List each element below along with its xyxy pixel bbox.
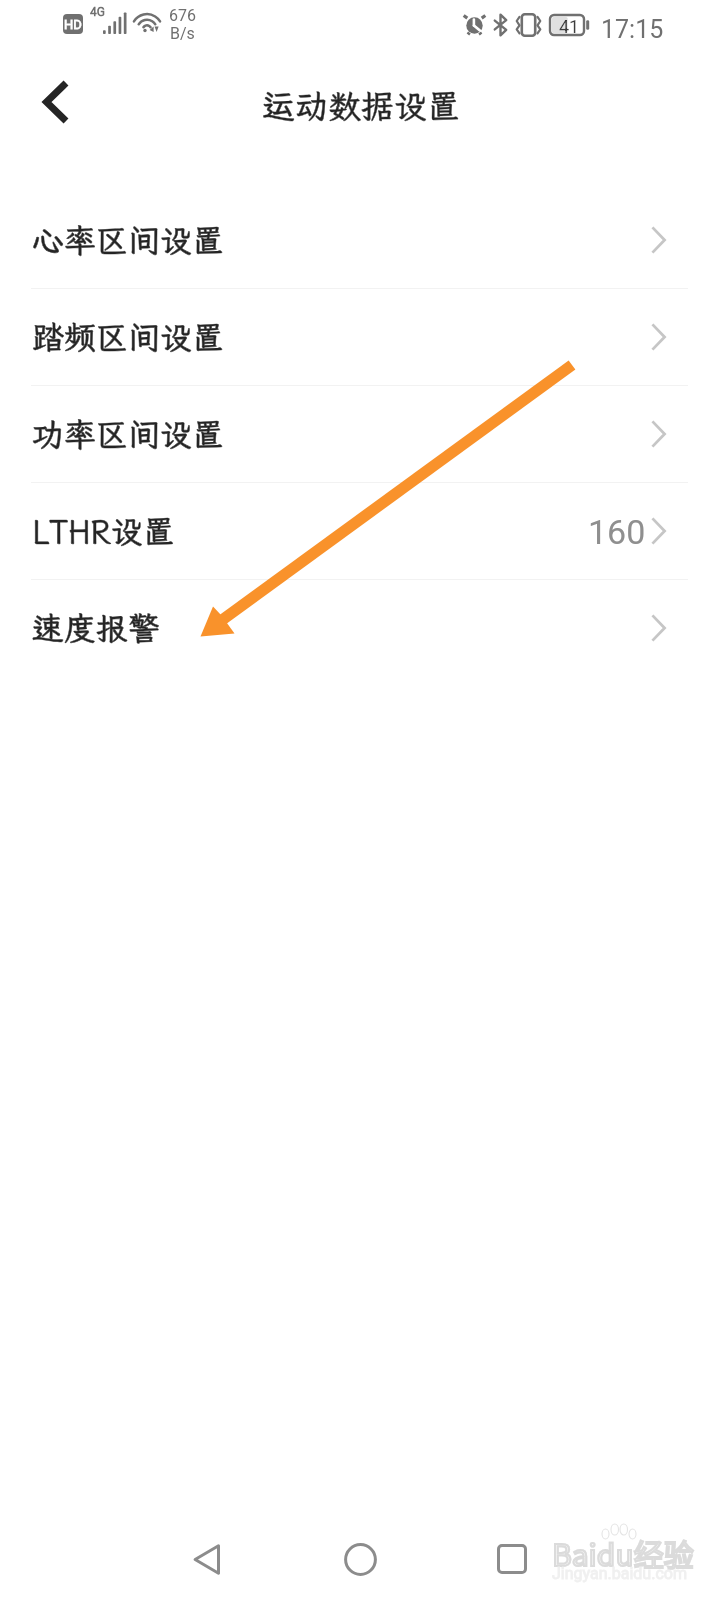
staticText: 17:15 <box>601 15 664 44</box>
button[interactable]: Back <box>18 65 92 139</box>
button[interactable]: LTHR设置 <box>0 483 720 580</box>
staticText: 41 <box>559 16 580 37</box>
button[interactable]: Recent apps <box>466 1513 558 1600</box>
button[interactable]: Home <box>314 1513 406 1600</box>
staticText: Baidu经验 <box>552 1531 694 1574</box>
button[interactable]: 踏频区间设置 <box>0 289 720 386</box>
staticText: 160 <box>588 512 646 552</box>
button[interactable]: 速度报警 <box>0 580 720 676</box>
staticText: 心率区间设置 <box>32 219 225 261</box>
staticText: LTHR设置 <box>32 510 175 552</box>
staticText: LTHR设置 <box>32 510 175 552</box>
staticText: 功率区间设置 <box>32 413 225 455</box>
staticText: HD <box>64 17 82 32</box>
staticText: 676 <box>169 6 196 25</box>
staticText: Jingyan.baidu.com <box>552 1564 687 1583</box>
staticText: 速度报警 <box>32 607 161 649</box>
staticText: 速度报警 <box>32 607 161 649</box>
staticText: 4G <box>90 5 105 19</box>
button[interactable]: 心率区间设置 <box>0 192 720 289</box>
staticText: 运动数据设置 <box>262 84 460 127</box>
staticText: B/s <box>170 24 195 43</box>
button[interactable]: 功率区间设置 <box>0 386 720 483</box>
staticText: 功率区间设置 <box>32 413 225 455</box>
staticText: 踏频区间设置 <box>32 316 225 358</box>
staticText: 踏频区间设置 <box>32 316 225 358</box>
button[interactable]: Back <box>160 1513 252 1600</box>
staticText: 心率区间设置 <box>32 219 225 261</box>
staticText: 运动数据设置 <box>262 84 460 127</box>
